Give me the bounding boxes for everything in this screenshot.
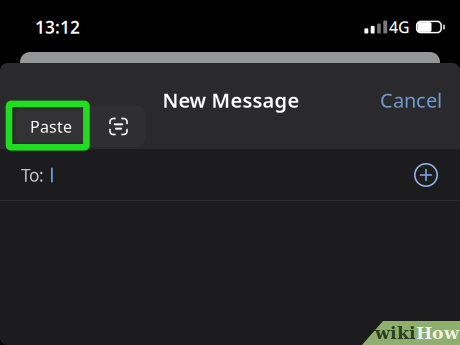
staticText: New Message (162, 87, 299, 113)
button[interactable]: Cancel (368, 79, 454, 121)
button[interactable]: Paste (16, 111, 86, 142)
staticText: 4G (389, 16, 410, 38)
staticText: wiki (375, 323, 416, 343)
staticText: Cancel (380, 87, 442, 113)
staticText: Paste (30, 116, 72, 137)
button[interactable]: Add contact (404, 153, 448, 197)
staticText: How (416, 323, 459, 343)
button[interactable]: Scan text (95, 106, 141, 147)
staticText: 13:12 (35, 15, 80, 38)
staticText: To: (21, 163, 44, 186)
